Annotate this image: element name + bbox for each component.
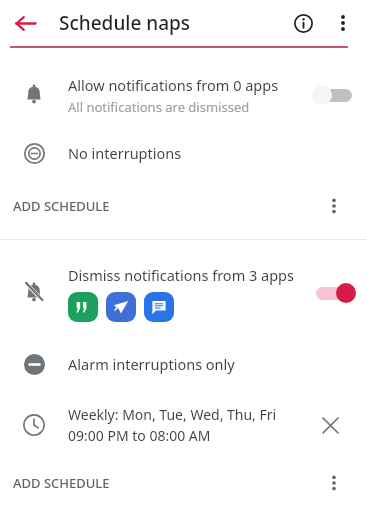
button[interactable]: Allow notifications from 0 apps [0, 69, 367, 121]
button[interactable]: Info [283, 3, 323, 43]
staticText: Schedule naps [59, 10, 191, 36]
button[interactable]: Back [6, 4, 44, 42]
button[interactable]: Weekly: Mon, Tue, Wed, Thu, Fri [0, 398, 367, 452]
staticText: Dismiss notifications from 3 apps [68, 265, 294, 285]
staticText: No interruptions [68, 143, 182, 163]
staticText: Allow notifications from 0 apps [68, 75, 279, 95]
staticText: All notifications are dismissed [68, 98, 250, 116]
button[interactable]: Schedule options [317, 189, 351, 223]
staticText: ADD SCHEDULE [13, 474, 110, 492]
staticText: ADD SCHEDULE [13, 197, 110, 215]
staticText: 09:00 PM to 08:00 AM [68, 426, 211, 445]
button[interactable]: No interruptions [0, 135, 367, 171]
button[interactable]: Schedule options [317, 466, 351, 500]
staticText: Weekly: Mon, Tue, Wed, Thu, Fri [68, 405, 277, 424]
staticText: Alarm interruptions only [68, 354, 235, 374]
button[interactable]: Dismiss notifications from 3 apps [0, 258, 367, 328]
button[interactable]: Allow notifications toggle, off [312, 82, 356, 108]
button[interactable]: ADD SCHEDULE [0, 464, 367, 502]
button[interactable]: Dismiss notifications toggle, on [312, 280, 356, 306]
button[interactable]: ADD SCHEDULE [0, 187, 367, 225]
button[interactable]: Alarm interruptions only [0, 346, 367, 382]
button[interactable]: Remove schedule [315, 410, 345, 440]
button[interactable]: More options [323, 3, 363, 43]
